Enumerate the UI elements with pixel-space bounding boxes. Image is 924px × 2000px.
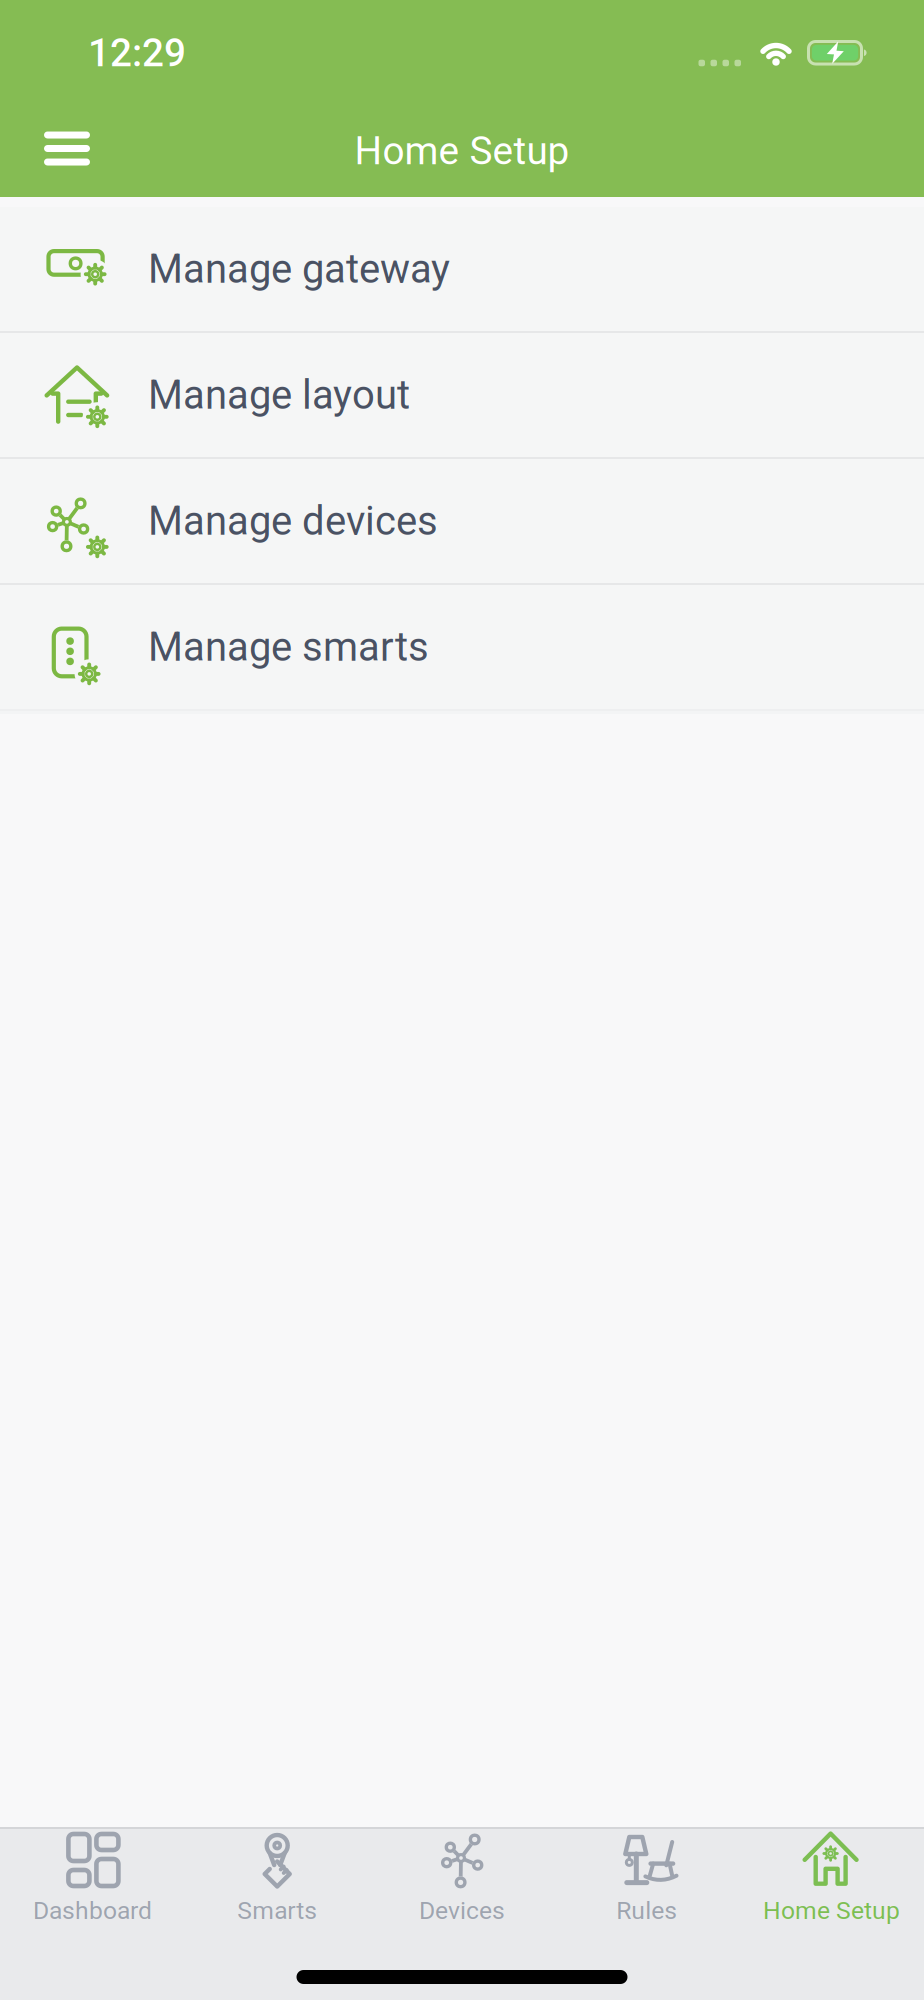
button[interactable]: Home Setup	[739, 1832, 924, 1925]
button[interactable]: Manage gateway	[0, 207, 924, 331]
staticText: Devices	[419, 1896, 505, 1925]
staticText: Dashboard	[33, 1896, 152, 1925]
button[interactable]: Manage smarts	[0, 585, 924, 709]
button[interactable]: Devices	[370, 1832, 554, 1925]
button[interactable]: Menu	[0, 131, 90, 165]
staticText: Home Setup	[763, 1896, 900, 1925]
staticText: Smarts	[237, 1896, 317, 1925]
button[interactable]: Manage devices	[0, 459, 924, 583]
staticText: Manage layout	[148, 372, 410, 418]
staticText: Rules	[616, 1896, 677, 1925]
staticText: Home Setup	[354, 128, 569, 174]
button[interactable]: Dashboard	[0, 1832, 185, 1925]
staticText: Manage devices	[148, 498, 438, 544]
button[interactable]: Rules	[554, 1832, 739, 1925]
staticText: 12:29	[88, 30, 186, 76]
staticText: Manage smarts	[148, 624, 429, 670]
button[interactable]: Smarts	[185, 1832, 370, 1925]
staticText: Manage gateway	[148, 246, 450, 292]
button[interactable]: Manage layout	[0, 333, 924, 457]
